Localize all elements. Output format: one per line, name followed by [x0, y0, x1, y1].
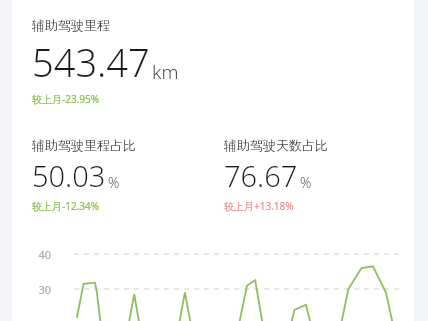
button[interactable]: 辅助驾驶里程占比 [32, 137, 224, 213]
staticText: 50.03 [32, 156, 106, 195]
staticText: 30 [38, 282, 51, 297]
button[interactable]: 辅助驾驶里程 [32, 17, 179, 106]
staticText: 辅助驾驶里程 [32, 17, 110, 33]
staticText: 较上月-23.95% [32, 92, 100, 106]
staticText: 辅助驾驶天数占比 [224, 137, 328, 153]
staticText: 40 [38, 247, 51, 262]
staticText: % [300, 173, 312, 192]
staticText: 较上月+13.18% [224, 199, 294, 213]
staticText: 543.47 [32, 36, 150, 88]
staticText: km [152, 59, 179, 85]
staticText: % [108, 173, 120, 192]
staticText: 辅助驾驶里程占比 [32, 137, 136, 153]
button[interactable]: 辅助驾驶天数占比 [224, 137, 328, 213]
staticText: 较上月-12.34% [32, 199, 100, 213]
staticText: 76.67 [224, 156, 298, 195]
